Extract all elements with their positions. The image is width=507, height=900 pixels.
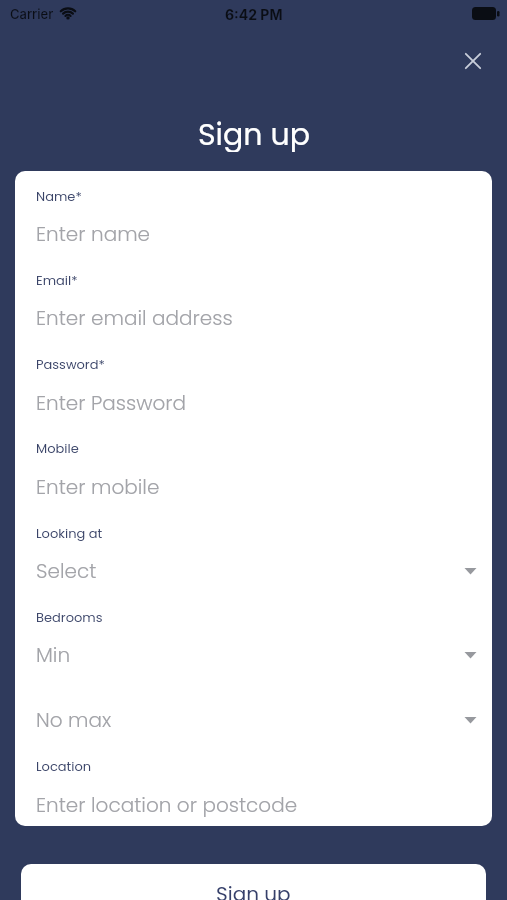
staticText: Mobile — [36, 439, 79, 457]
button[interactable]: Enter mobile — [36, 472, 492, 502]
staticText: No max — [36, 706, 112, 734]
staticText: Enter email address — [36, 304, 233, 332]
button[interactable]: Enter location or postcode — [36, 790, 492, 820]
button[interactable]: Enter name — [36, 219, 492, 249]
staticText: Enter name — [36, 220, 151, 248]
staticText: Password* — [36, 355, 105, 373]
staticText: Email* — [36, 271, 78, 289]
staticText: Sign up — [198, 114, 310, 152]
button[interactable]: Enter Password — [36, 388, 492, 418]
staticText: Sign up — [216, 880, 291, 900]
button[interactable] — [449, 37, 497, 85]
staticText: Enter Password — [36, 389, 187, 417]
staticText: Min — [36, 641, 71, 669]
staticText: Enter location or postcode — [36, 791, 298, 819]
staticText: 6:42 PM — [225, 6, 283, 23]
staticText: Bedrooms — [36, 608, 103, 626]
button[interactable]: No max — [36, 705, 492, 735]
button[interactable]: Enter email address — [36, 303, 492, 333]
button[interactable]: Min — [36, 640, 492, 670]
button[interactable]: Select — [36, 556, 492, 586]
staticText: Location — [36, 757, 92, 775]
staticText: Select — [36, 557, 97, 585]
button[interactable]: Sign up — [21, 864, 486, 900]
staticText: Looking at — [36, 524, 103, 542]
staticText: Carrier — [10, 6, 54, 22]
staticText: Enter mobile — [36, 473, 160, 501]
staticText: Name* — [36, 187, 82, 205]
